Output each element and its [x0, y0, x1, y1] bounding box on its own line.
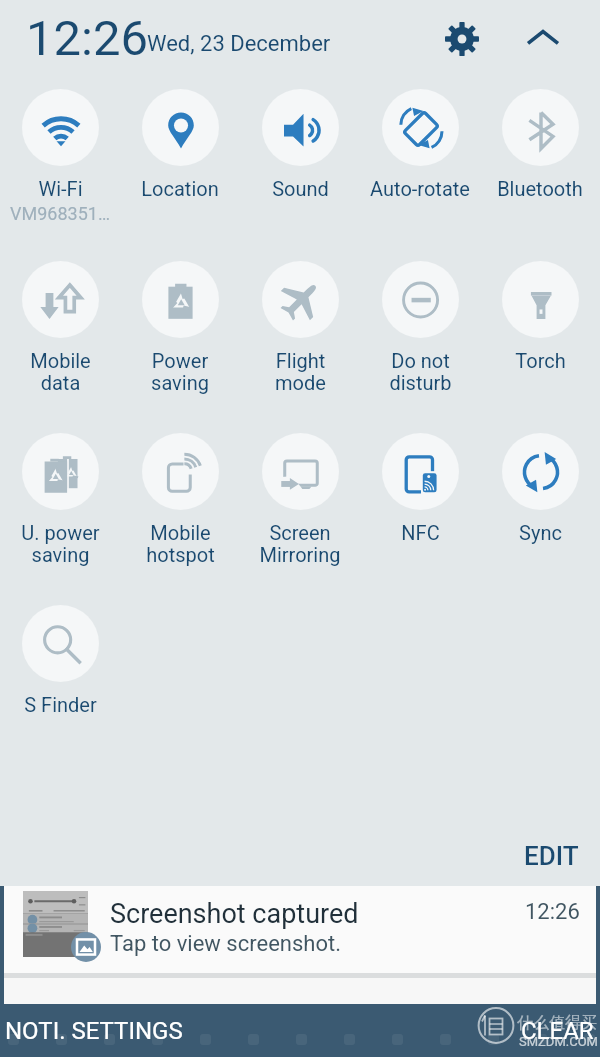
staticText: 12:26 [26, 10, 149, 67]
button[interactable]: Sound [240, 85, 360, 257]
staticText: Location [141, 177, 219, 200]
staticText: SMZDM.COM [519, 1034, 598, 1049]
staticText: Auto-rotate [370, 177, 470, 200]
button[interactable]: Bluetooth [480, 85, 600, 257]
button[interactable]: Torch [480, 257, 600, 429]
button[interactable]: Screen Mirroring [240, 429, 360, 601]
staticText: Bluetooth [497, 177, 583, 200]
staticText: 12:26 [525, 899, 580, 925]
staticText: Screenshot captured [110, 898, 359, 930]
staticText: Wed, 23 December [147, 31, 331, 57]
button[interactable]: Location [120, 85, 240, 257]
staticText: Sound [272, 177, 329, 200]
staticText: EDIT [524, 841, 579, 871]
staticText: VM968351… [10, 203, 110, 224]
button[interactable]: NFC [360, 429, 480, 601]
button[interactable]: Mobile data [0, 257, 120, 429]
staticText: Power saving [151, 349, 209, 395]
staticText: S Finder [24, 693, 97, 716]
staticText: NOTI. SETTINGS [5, 1017, 183, 1045]
button[interactable]: Collapse panel [517, 14, 569, 66]
button[interactable]: Sync [480, 429, 600, 601]
staticText: NFC [401, 521, 440, 544]
staticText: Sync [519, 521, 562, 544]
staticText: Torch [515, 349, 566, 372]
button[interactable]: S Finder [0, 601, 120, 773]
button[interactable]: U. power saving [0, 429, 120, 601]
staticText: Wi-Fi [38, 177, 83, 200]
button[interactable]: CLEAR [513, 1011, 600, 1051]
button[interactable]: Settings [436, 13, 488, 65]
staticText: Do not disturb [389, 349, 452, 395]
staticText: 什么值得买 [517, 1013, 597, 1033]
staticText: CLEAR [521, 1017, 594, 1045]
staticText: Mobile data [30, 349, 91, 395]
staticText: Flight mode [275, 349, 326, 395]
button[interactable]: EDIT [518, 837, 585, 875]
button[interactable]: Power saving [120, 257, 240, 429]
button[interactable]: Screenshot captured [4, 886, 596, 978]
button[interactable]: Flight mode [240, 257, 360, 429]
staticText: Screen Mirroring [259, 521, 341, 567]
button[interactable]: Do not disturb [360, 257, 480, 429]
button[interactable]: Wi-Fi [0, 85, 120, 257]
staticText: U. power saving [21, 521, 100, 567]
button[interactable]: Auto-rotate [360, 85, 480, 257]
button[interactable]: NOTI. SETTINGS [0, 1011, 191, 1051]
staticText: Mobile hotspot [146, 521, 215, 567]
button[interactable]: Mobile hotspot [120, 429, 240, 601]
staticText: Tap to view screenshot. [110, 931, 341, 957]
